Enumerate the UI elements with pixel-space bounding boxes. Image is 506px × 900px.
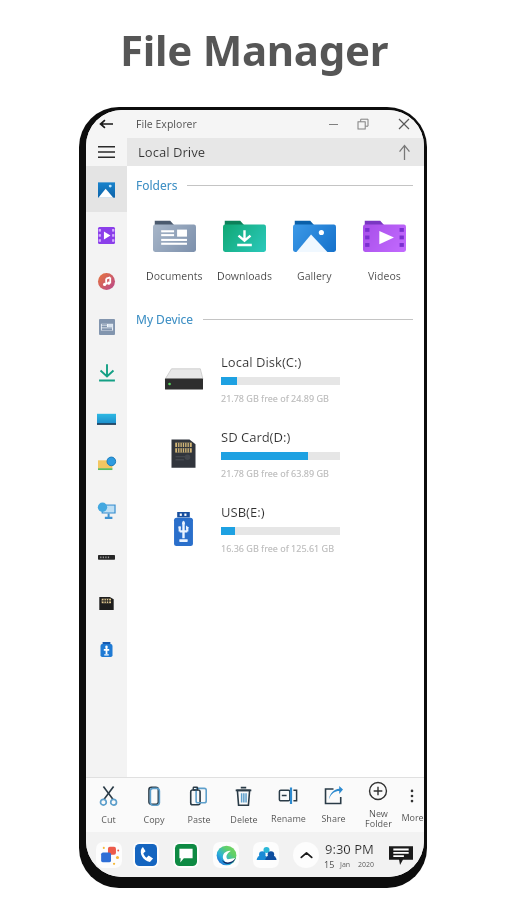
button[interactable]: Downloads [209, 220, 279, 283]
button[interactable]: Sidebar item [86, 212, 127, 258]
staticText: Gallery [297, 269, 332, 283]
staticText: More [401, 811, 424, 823]
staticText: Cut [101, 813, 116, 825]
staticText: Share [321, 812, 346, 824]
button[interactable]: Gallery [279, 220, 349, 283]
staticText: 21.78 GB free of 24.89 GB [221, 392, 329, 404]
staticText: Videos [368, 269, 401, 283]
button[interactable]: Menu [86, 138, 127, 166]
staticText: 15 [324, 858, 335, 870]
button[interactable]: Sidebar item [86, 488, 127, 534]
staticText: File Manager [120, 21, 389, 78]
button[interactable]: USB(E:) [127, 491, 424, 566]
staticText: Delete [230, 813, 258, 825]
button[interactable]: SD Card(D:) [127, 416, 424, 491]
button[interactable]: Phone [133, 842, 159, 868]
button[interactable]: Messages [173, 842, 199, 868]
staticText: Jan [340, 860, 351, 870]
staticText: Documents [146, 269, 203, 283]
staticText: New Folder [365, 807, 392, 829]
button[interactable]: Start [96, 842, 122, 868]
staticText: My Device [136, 311, 194, 327]
button[interactable]: Sidebar item [86, 304, 127, 350]
button[interactable]: Rename [266, 778, 311, 832]
button[interactable]: Sidebar item [86, 166, 127, 212]
button[interactable]: Show hidden icons [293, 842, 319, 868]
staticText: USB(E:) [221, 503, 265, 521]
button[interactable]: Share [311, 778, 356, 832]
button[interactable]: Sidebar item [86, 350, 127, 396]
button[interactable]: Close [393, 113, 415, 135]
button[interactable]: Sidebar item [86, 258, 127, 304]
button[interactable]: Cut [86, 778, 131, 832]
staticText: Copy [143, 813, 165, 825]
button[interactable]: Sidebar item [86, 534, 127, 580]
button[interactable]: Delete [221, 778, 266, 832]
staticText: Rename [271, 812, 306, 824]
button[interactable]: Videos [349, 220, 419, 283]
button[interactable]: Contacts [253, 842, 279, 868]
button[interactable]: More [400, 778, 424, 832]
staticText: SD Card(D:) [221, 428, 291, 446]
staticText: 16.36 GB free of 125.61 GB [221, 542, 334, 554]
staticText: 21.78 GB free of 63.89 GB [221, 467, 329, 479]
staticText: File Explorer [136, 117, 197, 131]
staticText: Downloads [217, 269, 272, 283]
button[interactable]: Back [95, 113, 117, 135]
button[interactable]: Notifications [388, 842, 414, 868]
button[interactable]: Up one level [391, 139, 417, 165]
staticText: Folders [136, 177, 178, 193]
button[interactable]: Copy [131, 778, 176, 832]
staticText: Paste [187, 813, 211, 825]
button[interactable]: Maximize [352, 113, 374, 135]
button[interactable]: Browser [213, 842, 239, 868]
staticText: 2020 [358, 860, 375, 870]
button[interactable]: Minimize [322, 113, 344, 135]
staticText: Local Drive [138, 143, 206, 161]
button[interactable]: Paste [176, 778, 221, 832]
staticText: 9:30 PM [325, 840, 374, 858]
button[interactable]: Sidebar item [86, 396, 127, 442]
button[interactable]: New Folder [356, 778, 400, 832]
button[interactable]: Sidebar item [86, 626, 127, 672]
button[interactable]: Sidebar item [86, 580, 127, 626]
button[interactable]: Local Disk(C:) [127, 341, 424, 416]
button[interactable]: Sidebar item [86, 442, 127, 488]
button[interactable]: Documents [139, 220, 209, 283]
staticText: Local Disk(C:) [221, 353, 302, 371]
